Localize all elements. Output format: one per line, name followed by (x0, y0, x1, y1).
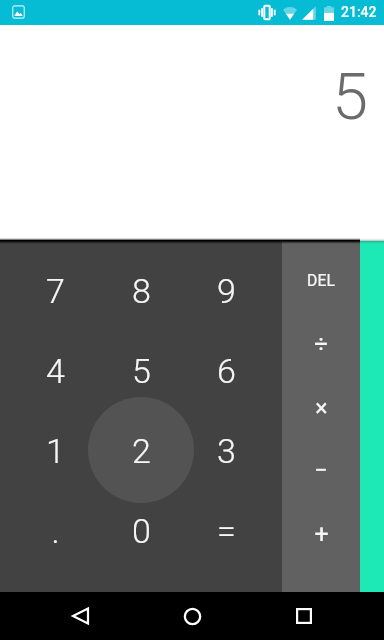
button[interactable]: DEL (282, 248, 360, 312)
button[interactable]: 9 (183, 251, 269, 331)
button[interactable]: 7 (12, 251, 98, 331)
button[interactable]: × (282, 376, 360, 440)
staticText: ÷ (314, 330, 328, 358)
button[interactable]: = (183, 491, 269, 571)
button[interactable]: 8 (98, 251, 184, 331)
staticText: = (217, 511, 236, 551)
staticText: 6 (217, 351, 236, 391)
button[interactable]: 3 (183, 411, 269, 491)
staticText: + (314, 520, 329, 549)
button[interactable]: 0 (98, 491, 184, 571)
button[interactable]: 6 (183, 331, 269, 411)
staticText: 5 (332, 59, 369, 135)
button[interactable]: 4 (12, 331, 98, 411)
staticText: 21:42 (341, 4, 377, 20)
button[interactable]: Back (56, 592, 104, 640)
other: Screenshot (12, 5, 25, 19)
staticText: 4 (46, 351, 65, 391)
button[interactable]: + (282, 502, 360, 566)
staticText: DEL (307, 271, 335, 290)
staticText: 0 (132, 511, 151, 551)
staticText: 9 (217, 271, 236, 311)
button[interactable]: ÷ (282, 312, 360, 376)
staticText: × (315, 395, 328, 422)
staticText: 2 (132, 431, 151, 471)
button[interactable]: . (12, 491, 98, 571)
button[interactable]: 1 (12, 411, 98, 491)
button[interactable]: Recent apps (280, 592, 328, 640)
button[interactable]: Home (168, 592, 216, 640)
staticText: 5 (132, 351, 151, 391)
staticText: 8 (132, 271, 151, 311)
button[interactable]: 5 (98, 331, 184, 411)
button[interactable]: − (282, 438, 360, 502)
button[interactable]: 2 (98, 411, 184, 491)
staticText: − (314, 456, 328, 484)
staticText: 3 (217, 431, 236, 471)
staticText: . (51, 511, 60, 551)
staticText: 1 (46, 431, 65, 471)
staticText: 7 (46, 271, 65, 311)
